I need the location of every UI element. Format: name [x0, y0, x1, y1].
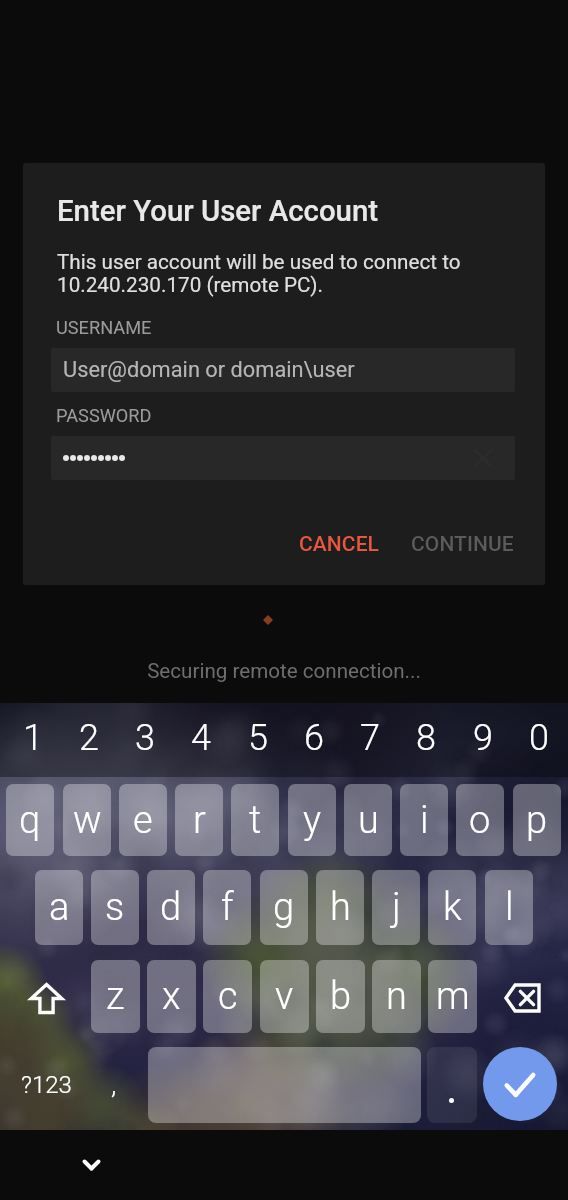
staticText: h — [330, 885, 351, 930]
button[interactable]: 0 — [511, 703, 566, 772]
button[interactable]: n — [372, 960, 421, 1033]
button[interactable]: Hide keyboard — [61, 1135, 121, 1195]
button[interactable]: 2 — [61, 703, 116, 772]
button[interactable]: 3 — [117, 703, 172, 772]
staticText: CONTINUE — [411, 532, 514, 557]
button[interactable]: Clear password — [51, 436, 515, 480]
staticText: v — [275, 974, 294, 1019]
button[interactable]: CANCEL — [287, 523, 392, 566]
button[interactable]: o — [456, 784, 504, 856]
button[interactable]: v — [260, 960, 309, 1033]
button[interactable]: q — [6, 784, 54, 856]
staticText: CANCEL — [299, 532, 380, 557]
staticText: USERNAME — [56, 317, 152, 338]
staticText: 2 — [79, 717, 99, 759]
button[interactable]: 1 — [5, 703, 60, 772]
staticText: z — [106, 974, 125, 1019]
staticText: Securing remote connection... — [0, 659, 568, 683]
staticText: y — [303, 798, 322, 843]
button[interactable]: s — [91, 870, 139, 945]
staticText: o — [469, 798, 491, 843]
staticText: x — [162, 974, 181, 1019]
button[interactable]: d — [147, 870, 195, 945]
button[interactable]: a — [35, 870, 83, 945]
button[interactable]: User@domain or domain\user — [51, 348, 515, 392]
button[interactable]: Enter — [483, 1047, 557, 1121]
button[interactable]: m — [428, 960, 477, 1033]
staticText: 8 — [416, 717, 436, 759]
button[interactable]: g — [260, 870, 308, 945]
button[interactable]: w — [63, 784, 111, 856]
button[interactable]: p — [513, 784, 561, 856]
button[interactable]: c — [203, 960, 252, 1033]
staticText: 6 — [304, 717, 324, 759]
button[interactable]: k — [428, 870, 476, 945]
staticText: l — [505, 885, 514, 930]
staticText: s — [105, 885, 125, 930]
staticText: w — [73, 798, 102, 843]
staticText: c — [218, 974, 238, 1019]
button[interactable]: Space — [148, 1047, 421, 1123]
staticText: , — [111, 1068, 117, 1101]
staticText: t — [249, 798, 262, 843]
staticText: r — [193, 798, 206, 843]
button[interactable]: j — [372, 870, 420, 945]
staticText: m — [436, 974, 470, 1019]
button[interactable]: Period — [427, 1047, 477, 1123]
staticText: f — [221, 885, 234, 930]
staticText: 3 — [135, 717, 155, 759]
button[interactable]: f — [203, 870, 251, 945]
staticText: 0 — [529, 717, 549, 759]
staticText: i — [420, 798, 429, 843]
staticText: p — [526, 798, 548, 843]
staticText: q — [19, 798, 41, 843]
button[interactable]: Backspace — [490, 960, 554, 1036]
button[interactable]: 6 — [286, 703, 341, 772]
button[interactable]: 5 — [230, 703, 285, 772]
button[interactable]: b — [316, 960, 365, 1033]
button[interactable]: i — [400, 784, 448, 856]
button[interactable]: ?123 — [11, 1047, 81, 1122]
staticText: j — [392, 885, 401, 930]
staticText: u — [358, 798, 379, 843]
staticText: 4 — [191, 717, 211, 759]
staticText: 9 — [473, 717, 493, 759]
button[interactable]: Comma — [95, 1047, 133, 1122]
button[interactable]: r — [175, 784, 223, 856]
button[interactable]: e — [119, 784, 167, 856]
staticText: a — [49, 885, 70, 930]
staticText: e — [133, 798, 153, 843]
button[interactable]: x — [147, 960, 196, 1033]
button[interactable]: 7 — [342, 703, 397, 772]
staticText: n — [386, 974, 407, 1019]
button[interactable]: 4 — [173, 703, 228, 772]
button[interactable]: h — [316, 870, 364, 945]
staticText: User@domain or domain\user — [63, 357, 355, 383]
staticText: d — [160, 885, 182, 930]
staticText: 7 — [360, 717, 380, 759]
staticText: g — [273, 885, 295, 930]
staticText: 5 — [248, 717, 268, 759]
staticText: This user account will be used to connec… — [57, 250, 461, 297]
staticText: 1 — [23, 717, 43, 759]
staticText: ?123 — [21, 1071, 72, 1099]
button[interactable]: t — [231, 784, 279, 856]
staticText: k — [443, 885, 462, 930]
button[interactable]: l — [485, 870, 533, 945]
button[interactable]: 8 — [398, 703, 453, 772]
button[interactable]: z — [91, 960, 140, 1033]
button[interactable]: 9 — [455, 703, 510, 772]
staticText: Enter Your User Account — [57, 194, 379, 228]
button[interactable]: y — [288, 784, 336, 856]
button[interactable]: CONTINUE — [399, 523, 526, 566]
staticText: b — [330, 974, 352, 1019]
button[interactable]: u — [344, 784, 392, 856]
button[interactable]: Shift — [14, 960, 78, 1036]
staticText: PASSWORD — [56, 405, 152, 426]
